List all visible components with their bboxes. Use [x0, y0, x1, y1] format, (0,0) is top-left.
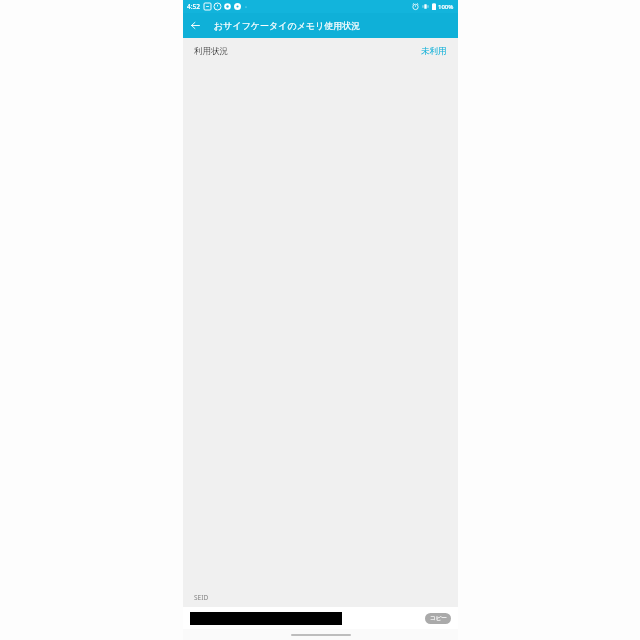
- staticText: コピー: [430, 615, 447, 622]
- staticText: 未利用: [421, 46, 447, 57]
- button[interactable]: コピー: [425, 613, 451, 624]
- staticText: 利用状況: [194, 46, 228, 57]
- button[interactable]: 戻る: [183, 13, 208, 38]
- staticText: SEID: [194, 593, 209, 602]
- staticText: 4:52: [187, 2, 200, 11]
- button[interactable]: 利用状況: [183, 38, 458, 64]
- staticText: 100%: [438, 3, 454, 11]
- staticText: おサイフケータイのメモリ使用状況: [214, 20, 361, 31]
